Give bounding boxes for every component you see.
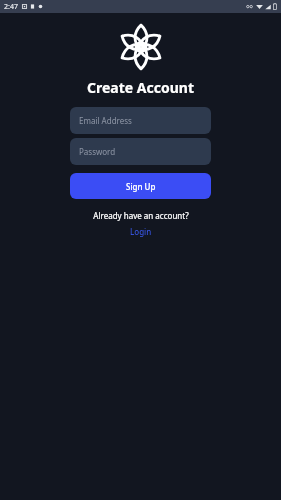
staticText: Email Address bbox=[79, 115, 132, 126]
staticText: Already have an account? bbox=[93, 210, 189, 221]
button[interactable]: Email Address bbox=[70, 107, 211, 134]
staticText: Sign Up bbox=[126, 181, 156, 192]
staticText: Login bbox=[130, 226, 152, 237]
staticText: 2:47 bbox=[4, 2, 18, 12]
button[interactable]: Sign Up bbox=[70, 173, 211, 199]
other: App logo bbox=[117, 23, 165, 71]
staticText: Create Account bbox=[87, 78, 194, 97]
button[interactable]: Login bbox=[124, 225, 158, 238]
staticText: Password bbox=[79, 146, 116, 157]
button[interactable]: Password bbox=[70, 138, 211, 165]
